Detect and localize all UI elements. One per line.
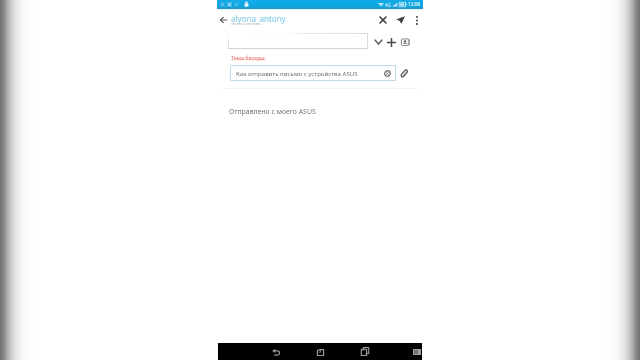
staticText: Тема беседы: bbox=[231, 54, 266, 61]
button[interactable]: Attach file bbox=[397, 66, 412, 81]
button[interactable]: Add recipient bbox=[385, 36, 397, 48]
staticText: 4G bbox=[385, 2, 391, 8]
staticText: alyona.antonyu… bbox=[231, 21, 263, 26]
button[interactable]: Home bbox=[314, 345, 327, 358]
button[interactable]: Discard bbox=[376, 13, 390, 27]
button[interactable]: More options bbox=[410, 13, 424, 27]
staticText: Отправлено с моего ASUS bbox=[229, 107, 316, 116]
button[interactable]: Back bbox=[269, 345, 282, 358]
staticText: 12:06 bbox=[408, 1, 421, 8]
button[interactable]: Choose from contacts bbox=[399, 36, 411, 48]
button[interactable]: Show more fields bbox=[372, 36, 384, 48]
button[interactable]: Back bbox=[217, 13, 230, 26]
staticText: alyona_antony bbox=[231, 13, 286, 24]
button[interactable]: Как отправить письмо с устройства ASUS bbox=[230, 65, 396, 81]
staticText: Как отправить письмо с устройства ASUS bbox=[236, 69, 358, 77]
button[interactable]: Recent apps bbox=[358, 345, 371, 358]
button[interactable]: Send bbox=[393, 13, 407, 27]
button[interactable]: Screenshot bbox=[411, 346, 422, 357]
button[interactable] bbox=[228, 33, 368, 49]
